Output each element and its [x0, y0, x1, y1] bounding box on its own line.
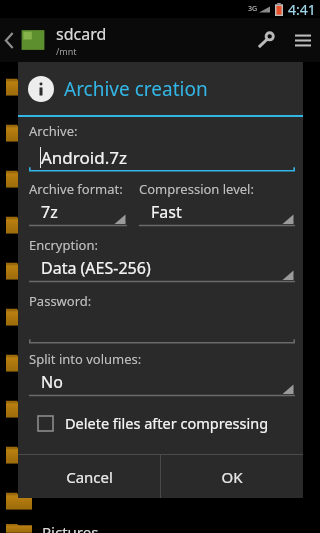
staticText: Password: [29, 292, 92, 310]
staticText: Data (AES-256) [41, 257, 151, 279]
staticText: Delete files after compressing [65, 413, 269, 433]
button[interactable]: Back [0, 18, 18, 62]
staticText: Cancel [66, 467, 113, 487]
staticText: Archive creation [64, 76, 208, 102]
staticText: sdcard [56, 23, 107, 45]
staticText: Encryption: [29, 236, 98, 254]
button[interactable] [18, 27, 48, 53]
staticText: 3G [248, 4, 258, 14]
staticText: OK [221, 467, 243, 487]
button[interactable]: OK [161, 455, 303, 498]
staticText: Android.7z [41, 146, 127, 169]
button[interactable]: 7z [29, 199, 127, 228]
staticText: Archive format: [29, 180, 123, 198]
button[interactable]: More options [286, 18, 320, 62]
button[interactable]: Fast [139, 199, 295, 228]
staticText: Fast [151, 201, 182, 223]
button[interactable]: Delete files after compressing [29, 409, 295, 437]
button[interactable]: Cancel [18, 455, 160, 498]
button[interactable] [29, 310, 295, 344]
staticText: Archive: [29, 122, 78, 140]
button[interactable]: Data (AES-256) [29, 255, 295, 284]
staticText: Pictures [42, 522, 99, 533]
staticText: Split into volumes: [29, 350, 142, 368]
staticText: /mnt [56, 45, 77, 57]
button[interactable]: No [29, 369, 295, 398]
button[interactable]: Tools [244, 18, 286, 62]
staticText: No [41, 371, 63, 393]
staticText: Compression level: [139, 180, 254, 198]
button[interactable]: Android.7z [29, 142, 295, 172]
staticText: 4:41 [288, 0, 316, 18]
staticText: 7z [41, 201, 58, 223]
